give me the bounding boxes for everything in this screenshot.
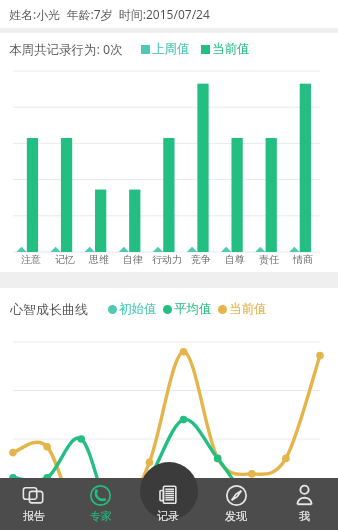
button[interactable]: 我 [270, 478, 338, 530]
staticText: 思维 [89, 253, 109, 266]
staticText: 本周共记录行为: 0次 [9, 41, 123, 58]
staticText: 记录 [157, 509, 179, 523]
staticText: 当前值 [212, 41, 250, 57]
button[interactable]: 报告 [0, 478, 67, 530]
staticText: 竞争 [191, 253, 211, 266]
button[interactable]: 发现 [202, 478, 270, 530]
staticText: 我 [299, 509, 310, 523]
staticText: 平均值 [174, 301, 212, 317]
staticText: 自尊 [225, 253, 245, 266]
staticText: 自律 [123, 253, 143, 266]
staticText: 情商 [293, 253, 313, 266]
staticText: 行动力 [152, 253, 182, 266]
staticText: 初始值 [119, 301, 157, 317]
staticText: 记忆 [55, 253, 75, 266]
staticText: 当前值 [229, 301, 267, 317]
staticText: 报告 [23, 509, 45, 523]
staticText: 注意 [21, 253, 41, 266]
staticText: 上周值 [152, 41, 190, 57]
button[interactable]: 专家 [67, 478, 134, 530]
button[interactable]: 记录 [134, 478, 202, 530]
staticText: 责任 [259, 253, 279, 266]
staticText: 专家 [90, 509, 112, 523]
staticText: 姓名:小光 年龄:7岁 时间:2015/07/24 [9, 6, 210, 22]
staticText: 发现 [225, 509, 247, 523]
staticText: 心智成长曲线 [10, 301, 88, 317]
